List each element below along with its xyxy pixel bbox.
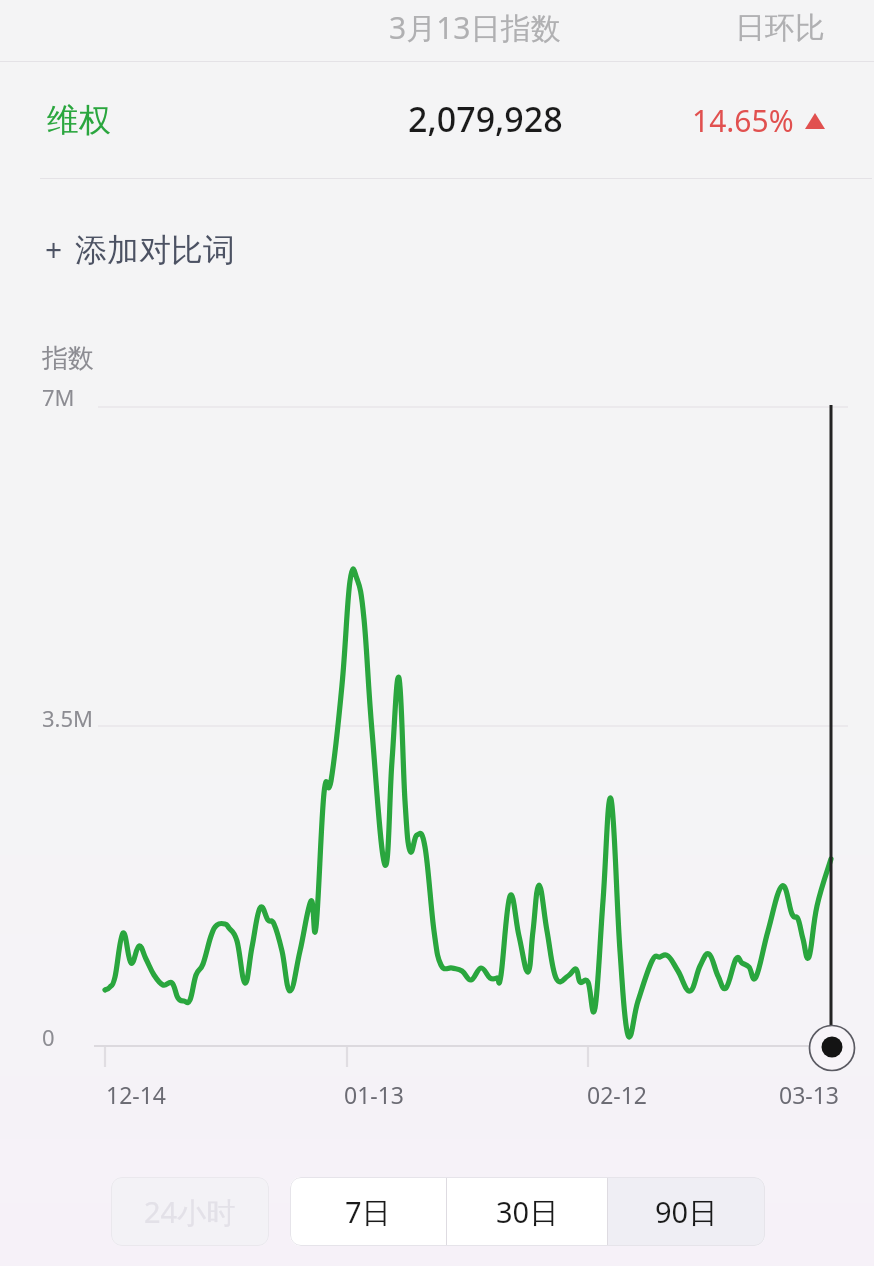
button[interactable]: 90日 — [608, 1177, 765, 1246]
button[interactable]: 24小时 — [111, 1177, 269, 1246]
staticText: 添加对比词 — [75, 230, 235, 270]
staticText: 90日 — [655, 1192, 718, 1232]
staticText: 24小时 — [144, 1192, 236, 1232]
staticText: 02-12 — [587, 1079, 648, 1110]
staticText: + — [45, 229, 63, 270]
staticText: 指数 — [42, 342, 94, 375]
staticText: 03-13 — [779, 1079, 840, 1110]
staticText: 日环比 — [735, 9, 825, 47]
staticText: 30日 — [496, 1192, 559, 1232]
staticText: 3.5M — [42, 703, 94, 733]
button[interactable]: + — [0, 221, 280, 278]
staticText: 14.65% — [692, 100, 794, 141]
staticText: 维权 — [47, 100, 111, 140]
staticText: 2,079,928 — [408, 96, 563, 142]
staticText: 3月13日指数 — [389, 7, 561, 48]
button[interactable]: 7日 — [290, 1177, 446, 1246]
button[interactable]: 30日 — [447, 1177, 607, 1246]
staticText: 7日 — [345, 1192, 391, 1232]
staticText: 01-13 — [344, 1079, 405, 1110]
staticText: 7M — [42, 382, 75, 412]
staticText: 0 — [42, 1022, 55, 1052]
staticText: 12-14 — [106, 1079, 167, 1110]
